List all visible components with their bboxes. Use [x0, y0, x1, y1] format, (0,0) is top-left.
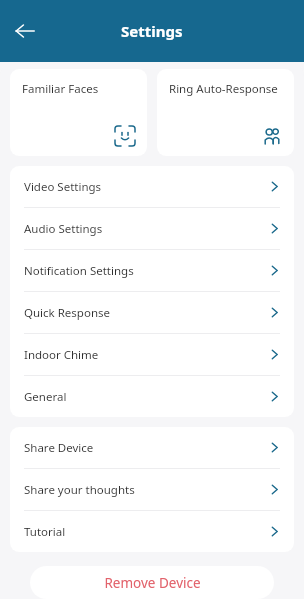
- button[interactable]: Notification Settings: [10, 250, 294, 291]
- button[interactable]: General: [10, 376, 294, 417]
- button[interactable]: Video Settings: [10, 166, 294, 207]
- button[interactable]: Share Device: [10, 427, 294, 468]
- button[interactable]: Familiar Faces: [10, 69, 147, 156]
- button[interactable]: Remove Device: [30, 566, 274, 599]
- button[interactable]: Share your thoughts: [10, 469, 294, 510]
- button[interactable]: Back: [8, 14, 42, 48]
- staticText: Share your thoughts: [24, 482, 269, 498]
- staticText: Share Device: [24, 440, 269, 456]
- staticText: Notification Settings: [24, 263, 269, 279]
- button[interactable]: Audio Settings: [10, 208, 294, 249]
- staticText: Familiar Faces: [22, 81, 99, 97]
- button[interactable]: Indoor Chime: [10, 334, 294, 375]
- staticText: Audio Settings: [24, 221, 269, 237]
- button[interactable]: Ring Auto-Response: [157, 69, 294, 156]
- button[interactable]: Tutorial: [10, 511, 294, 552]
- staticText: Video Settings: [24, 179, 269, 195]
- staticText: General: [24, 389, 269, 405]
- staticText: Tutorial: [24, 524, 269, 540]
- staticText: Settings: [121, 21, 183, 41]
- button[interactable]: Quick Response: [10, 292, 294, 333]
- staticText: Quick Response: [24, 305, 269, 321]
- staticText: Remove Device: [104, 574, 201, 592]
- staticText: Indoor Chime: [24, 347, 269, 363]
- staticText: Ring Auto-Response: [169, 81, 278, 97]
